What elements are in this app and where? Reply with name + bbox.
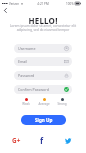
button[interactable]: Sign up with Google xyxy=(10,134,22,146)
staticText: Sign Up xyxy=(35,117,53,123)
staticText: Verizon xyxy=(9,2,20,6)
button[interactable]: Confirm Password xyxy=(14,85,72,94)
staticText: Confirm Password xyxy=(18,87,49,92)
button[interactable]: Average xyxy=(35,98,53,106)
staticText: Username xyxy=(18,46,36,51)
button[interactable]: Sign up with Facebook xyxy=(36,134,48,146)
button[interactable]: Sign up with Twitter xyxy=(62,134,74,146)
staticText: Weak xyxy=(22,102,30,106)
staticText: Lorem ipsum dolor sit amet, consectetur … xyxy=(6,24,80,32)
staticText: 4:21 PM xyxy=(0,2,86,6)
button[interactable]: Back xyxy=(0,5,10,15)
button[interactable]: Strong xyxy=(53,98,71,106)
button[interactable]: Sign Up xyxy=(21,115,66,125)
staticText: Password xyxy=(18,73,35,78)
staticText: Average xyxy=(38,102,50,106)
staticText: G+ xyxy=(12,136,21,145)
staticText: 100% xyxy=(66,2,74,6)
button[interactable]: Email xyxy=(14,57,72,66)
button[interactable]: Password xyxy=(14,71,72,80)
button[interactable]: Weak xyxy=(17,98,35,106)
staticText: f xyxy=(40,135,44,146)
button[interactable]: Username xyxy=(14,44,72,53)
staticText: HELLO! xyxy=(0,15,86,26)
staticText: Strong xyxy=(57,102,67,106)
staticText: Email xyxy=(18,59,28,64)
